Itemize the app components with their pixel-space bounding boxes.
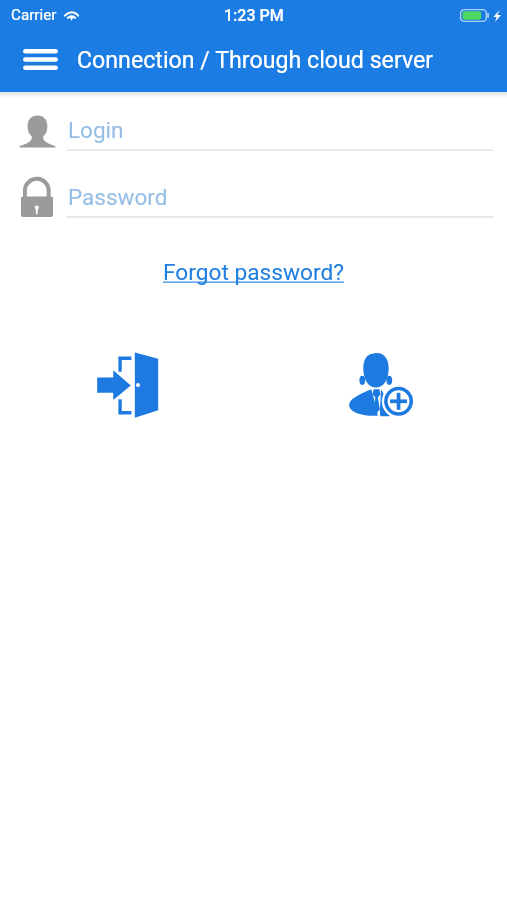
button[interactable]: Register new user xyxy=(347,352,413,418)
staticText: Connection / Through cloud server xyxy=(77,46,434,73)
staticText: 1:23 PM xyxy=(224,6,284,25)
staticText: Login xyxy=(68,117,124,143)
staticText: Password xyxy=(68,184,168,210)
staticText: Carrier xyxy=(11,6,57,24)
button[interactable]: Menu xyxy=(20,42,61,76)
button[interactable]: Sign in xyxy=(97,352,159,419)
button[interactable]: Forgot password? xyxy=(163,259,344,286)
